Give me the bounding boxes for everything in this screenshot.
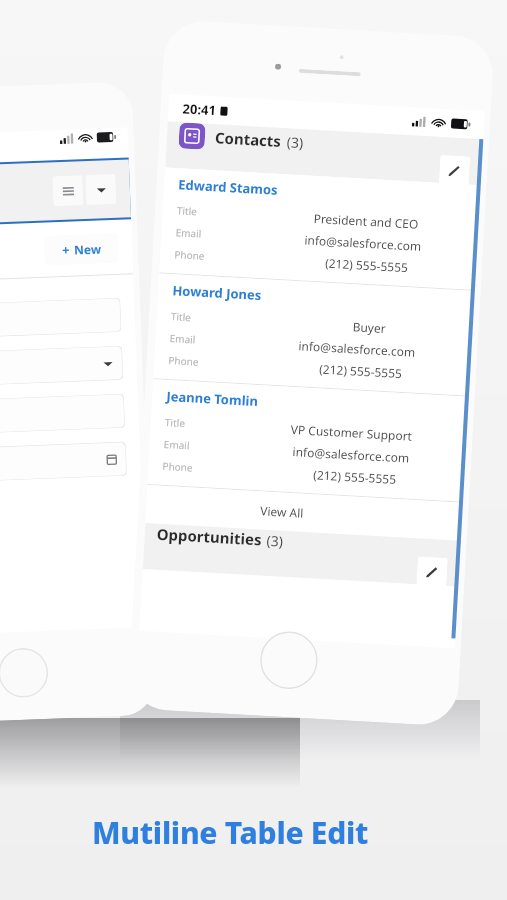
button[interactable]: Edit [416, 556, 448, 588]
staticText: Phone [168, 353, 221, 370]
staticText: VP Customer Support [290, 421, 413, 444]
staticText: Email [169, 331, 222, 348]
staticText: Title [165, 415, 217, 432]
staticText: info@salesforce.com [292, 443, 410, 466]
staticText: President and CEO [313, 210, 419, 232]
button[interactable]: Howard Jones [172, 281, 263, 304]
button[interactable]: + [44, 233, 119, 266]
staticText: (212) 555-5555 [319, 360, 403, 381]
button[interactable]: Toolbar action [52, 175, 83, 206]
button[interactable]: Jeanne Tomlin [166, 387, 259, 410]
staticText: Contacts [214, 127, 282, 151]
staticText: (3) [286, 132, 304, 152]
button[interactable] [0, 442, 127, 484]
staticText: View All [260, 502, 305, 521]
staticText: (212) 555-5555 [325, 255, 408, 275]
staticText: Opportunities [156, 524, 262, 549]
staticText: + [62, 241, 70, 259]
staticText: Title [176, 203, 229, 220]
button[interactable]: Toolbar action [85, 174, 116, 205]
staticText: info@salesforce.com [304, 231, 422, 254]
staticText: (212) 555-5555 [313, 466, 397, 487]
button[interactable]: Edit [439, 155, 470, 186]
staticText: Phone [162, 459, 215, 476]
button[interactable]: Edward Stamos [178, 175, 279, 199]
button[interactable]: Opportunities [143, 523, 461, 587]
staticText: Title [171, 309, 223, 326]
staticText: (3) [266, 531, 284, 551]
button[interactable] [0, 346, 123, 388]
button[interactable]: Contacts [165, 122, 483, 185]
staticText: info@salesforce.com [298, 337, 416, 360]
staticText: Mutiline Table Edit [92, 812, 369, 853]
staticText: New [74, 240, 101, 257]
staticText: 20:41 [182, 99, 217, 119]
staticText: Email [175, 225, 228, 242]
button[interactable]: View All [145, 485, 463, 541]
staticText: Email [163, 437, 216, 454]
staticText: Buyer [352, 318, 387, 336]
staticText: Phone [174, 247, 227, 264]
